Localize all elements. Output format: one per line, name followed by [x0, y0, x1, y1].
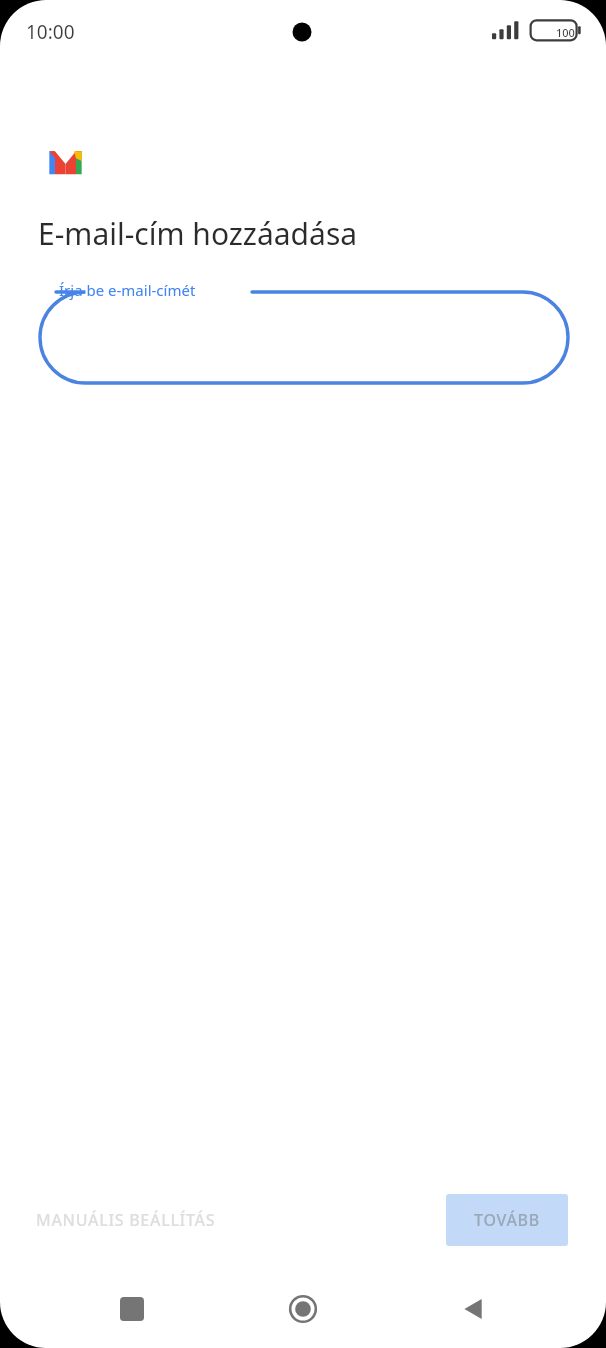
button[interactable]: Back: [446, 1281, 502, 1337]
button[interactable]: Home: [275, 1281, 331, 1337]
button[interactable]: TOVÁBB: [446, 1194, 568, 1246]
staticText: 100: [556, 25, 575, 40]
staticText: MANUÁLIS BEÁLLÍTÁS: [36, 1209, 216, 1231]
staticText: 10:00: [26, 19, 75, 45]
button[interactable]: Írja be e-mail-címét: [0, 280, 606, 384]
staticText: TOVÁBB: [474, 1209, 540, 1231]
button[interactable]: Recent apps: [104, 1281, 160, 1337]
staticText: Írja be e-mail-címét: [59, 280, 196, 300]
staticText: E-mail-cím hozzáadása: [38, 213, 358, 254]
button[interactable]: MANUÁLIS BEÁLLÍTÁS: [16, 1195, 236, 1245]
